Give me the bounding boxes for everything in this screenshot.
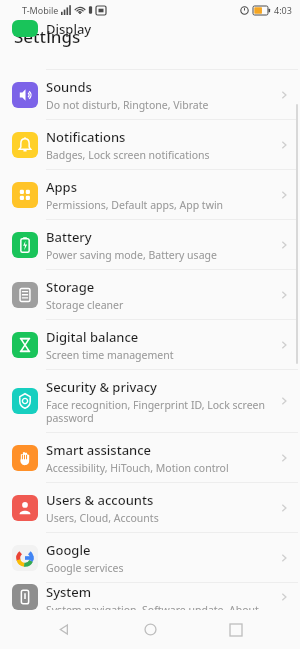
staticText: 4:03 [274,4,292,16]
staticText: Display [46,20,92,37]
staticText: Apps [46,178,77,196]
staticText: Screen time management [46,348,174,362]
button[interactable]: Recent apps [214,610,258,649]
staticText: Notifications [46,128,126,146]
button[interactable]: Smart assistance [0,433,300,482]
staticText: Storage [46,278,95,296]
staticText: Face recognition, Fingerprint ID, Lock s… [46,398,272,425]
button[interactable]: Notifications [0,120,300,169]
button[interactable]: Google [0,533,300,582]
staticText: Storage cleaner [46,298,124,312]
staticText: Settings [14,25,81,48]
staticText: T-Mobile [22,4,59,16]
button[interactable]: Digital balance [0,320,300,369]
staticText: Power saving mode, Battery usage [46,248,217,262]
button[interactable]: Home [128,610,172,649]
button[interactable]: System [0,583,300,610]
staticText: Sounds [46,78,92,96]
staticText: Google [46,541,91,559]
staticText: Google services [46,561,124,575]
button[interactable]: Back [42,610,86,649]
button[interactable]: Security & privacy [0,370,300,432]
staticText: System [46,583,92,601]
staticText: Permissions, Default apps, App twin [46,198,224,212]
staticText: Accessibility, HiTouch, Motion control [46,461,229,475]
staticText: Users, Cloud, Accounts [46,511,159,525]
staticText: Badges, Lock screen notifications [46,148,210,162]
staticText: Security & privacy [46,378,157,396]
staticText: Do not disturb, Ringtone, Vibrate [46,98,209,112]
staticText: Battery [46,228,92,246]
button[interactable]: Battery [0,220,300,269]
button[interactable]: Storage [0,270,300,319]
button[interactable]: Apps [0,170,300,219]
staticText: System navigation, Software update, Abou… [46,603,272,610]
staticText: Digital balance [46,328,139,346]
staticText: Smart assistance [46,441,152,459]
button[interactable]: Sounds [0,70,300,119]
button[interactable]: Users & accounts [0,483,300,532]
staticText: Users & accounts [46,491,154,509]
